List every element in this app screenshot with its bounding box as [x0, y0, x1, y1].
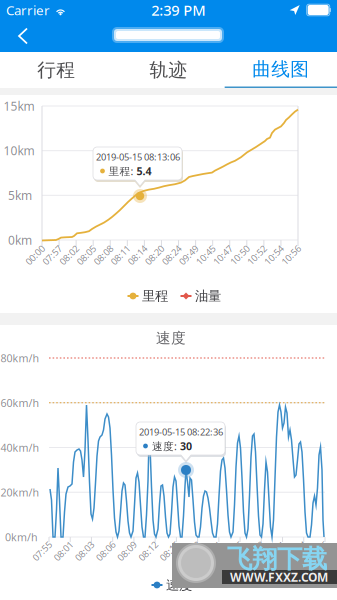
- staticText: 15km: [3, 98, 34, 114]
- button[interactable]: Back: [0, 20, 42, 51]
- staticText: 08:05: [75, 249, 98, 261]
- staticText: 10:45: [222, 545, 245, 557]
- staticText: 10:45: [194, 249, 217, 261]
- staticText: 08:15: [158, 545, 181, 557]
- staticText: 09:49: [177, 249, 200, 261]
- staticText: 10:48: [243, 545, 266, 557]
- staticText: 08:20: [143, 249, 166, 261]
- staticText: 5.4: [136, 164, 151, 178]
- staticText: 10:54: [285, 545, 308, 557]
- staticText: 08:24: [160, 249, 183, 261]
- staticText: 08:14: [126, 249, 149, 261]
- staticText: 里程: [142, 288, 168, 304]
- staticText: 09:21: [200, 545, 223, 557]
- staticText: Carrier: [6, 1, 50, 19]
- staticText: 轨迹: [149, 58, 187, 81]
- staticText: 曲线图: [252, 58, 309, 81]
- staticText: 10:51: [264, 545, 287, 557]
- staticText: 速度: [166, 577, 192, 593]
- staticText: 速度: [156, 329, 186, 347]
- staticText: 速度:: [152, 439, 177, 453]
- staticText: 08:06: [94, 545, 117, 557]
- staticText: 10:54: [262, 249, 285, 261]
- staticText: 里程:: [108, 164, 133, 178]
- staticText: 10:56: [279, 249, 302, 261]
- button[interactable]: 轨迹: [112, 52, 225, 88]
- staticText: 10:52: [245, 249, 268, 261]
- staticText: 10:56: [306, 545, 329, 557]
- staticText: 2019-05-15 08:13:06: [96, 151, 180, 163]
- staticText: 80km/h: [0, 351, 39, 365]
- staticText: 0km/h: [5, 530, 38, 544]
- staticText: 2019-05-15 08:22:36: [139, 426, 223, 438]
- staticText: 08:02: [58, 249, 81, 261]
- staticText: 08:01: [52, 545, 75, 557]
- staticText: 08:08: [92, 249, 115, 261]
- staticText: 08:12: [137, 545, 160, 557]
- staticText: 08:09: [115, 545, 138, 557]
- button[interactable]: 曲线图: [225, 52, 337, 88]
- staticText: WWW.FXXZ.COM: [230, 569, 328, 585]
- staticText: 5km: [8, 187, 32, 203]
- staticText: 00:00: [23, 249, 46, 261]
- staticText: 20km/h: [0, 485, 39, 499]
- staticText: 07:57: [41, 249, 64, 261]
- staticText: 10:47: [211, 249, 234, 261]
- staticText: 0km: [8, 232, 32, 248]
- staticText: 08:23: [179, 545, 202, 557]
- staticText: 60km/h: [0, 396, 39, 410]
- staticText: 07:55: [30, 545, 53, 557]
- staticText: 08:11: [109, 249, 132, 261]
- staticText: 行程: [37, 58, 75, 81]
- staticText: 10km: [3, 143, 34, 159]
- staticText: 飞翔下载: [227, 543, 327, 574]
- button[interactable]: 行程: [0, 52, 112, 88]
- staticText: 08:03: [73, 545, 96, 557]
- staticText: 10:50: [228, 249, 251, 261]
- staticText: 40km/h: [0, 440, 39, 455]
- staticText: 油量: [195, 288, 221, 304]
- staticText: 30: [180, 439, 192, 453]
- staticText: 2:39 PM: [151, 0, 205, 20]
